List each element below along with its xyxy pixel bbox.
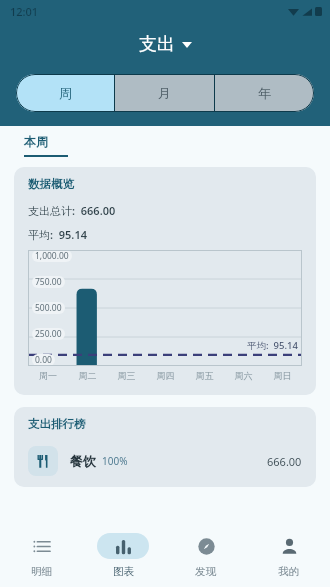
button[interactable]: 本周 [24,134,68,157]
staticText: 周二 [68,370,107,381]
staticText: 周一 [28,370,68,381]
staticText: 周六 [224,370,263,381]
staticText: 我的 [278,565,299,578]
staticText: 12:01 [10,4,39,19]
staticText: 月 [158,85,171,101]
button[interactable]: 图表 [82,523,164,587]
button[interactable]: 我的 [247,523,330,587]
staticText: 250.00 [35,328,62,340]
staticText: 本周 [24,134,48,149]
staticText: 1,000.00 [35,250,69,262]
button[interactable]: 年 [215,74,314,112]
button[interactable]: 餐饮 [28,441,302,481]
staticText: 明细 [31,565,52,578]
button[interactable]: 明细 [0,523,82,587]
staticText: 666.00 [267,454,302,469]
staticText: 750.00 [35,276,62,288]
other: 图表 [115,538,132,555]
staticText: 数据概览 [28,177,74,191]
staticText: 周日 [263,370,302,381]
staticText: 100% [102,454,128,468]
staticText: 周四 [146,370,185,381]
staticText: 周 [59,85,72,101]
staticText: 支出排行榜 [28,417,86,431]
staticText: 平均: 95.14 [28,227,87,242]
button[interactable]: 发现 [164,523,247,587]
staticText: 0.00 [35,354,52,366]
staticText: 图表 [113,565,134,578]
staticText: 平均: 95.14 [247,339,298,352]
staticText: 周三 [107,370,146,381]
button[interactable]: 周 [16,74,114,112]
staticText: 发现 [195,565,216,578]
staticText: 支出总计: 666.00 [28,203,116,218]
staticText: 500.00 [35,302,62,314]
staticText: 餐饮 [70,453,96,469]
staticText: 周五 [185,370,224,381]
button[interactable]: 月 [115,74,214,112]
other: 我的 [281,538,298,555]
other: 发现 [198,538,215,555]
staticText: 年 [258,85,271,101]
other: 明细 [33,538,50,555]
staticText: 支出 [139,33,175,56]
